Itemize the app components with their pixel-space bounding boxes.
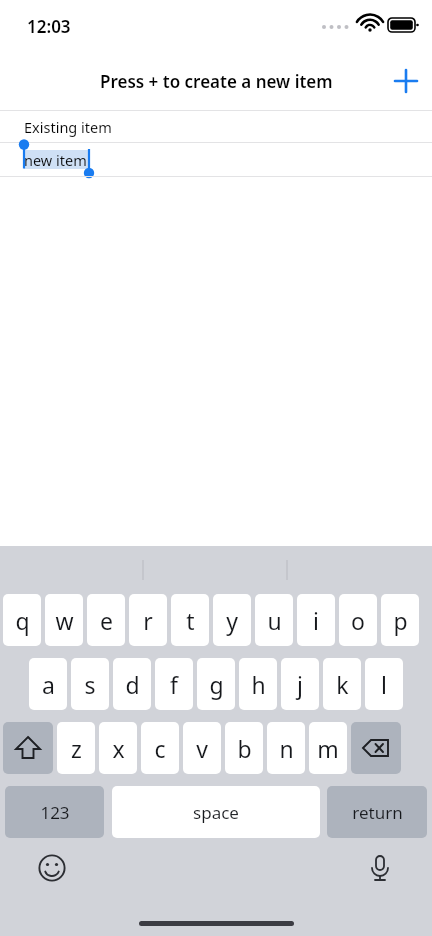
staticText: t: [186, 605, 195, 636]
button[interactable]: z: [57, 722, 95, 774]
button[interactable]: r: [129, 594, 167, 646]
button[interactable]: Shift: [3, 722, 53, 774]
staticText: n: [279, 733, 294, 764]
staticText: x: [112, 733, 125, 764]
staticText: return: [352, 801, 403, 824]
staticText: new item: [24, 150, 87, 170]
button[interactable]: o: [339, 594, 377, 646]
button[interactable]: m: [309, 722, 347, 774]
button[interactable]: k: [323, 658, 361, 710]
button[interactable]: t: [171, 594, 209, 646]
staticText: y: [226, 605, 238, 636]
button[interactable]: u: [255, 594, 293, 646]
staticText: g: [209, 669, 224, 700]
button[interactable]: x: [99, 722, 137, 774]
staticText: e: [100, 605, 113, 636]
button[interactable]: w: [45, 594, 83, 646]
button[interactable]: v: [183, 722, 221, 774]
staticText: m: [317, 733, 339, 764]
button[interactable]: l: [365, 658, 403, 710]
button[interactable]: 123: [5, 786, 104, 838]
staticText: Press + to create a new item: [100, 70, 333, 93]
staticText: q: [15, 605, 30, 636]
button[interactable]: Existing item: [0, 111, 432, 142]
button[interactable]: Backspace: [351, 722, 401, 774]
button[interactable]: n: [267, 722, 305, 774]
button[interactable]: h: [239, 658, 277, 710]
staticText: z: [71, 733, 82, 764]
button[interactable]: f: [155, 658, 193, 710]
staticText: c: [154, 733, 166, 764]
staticText: p: [393, 605, 408, 636]
staticText: j: [297, 669, 303, 700]
button[interactable]: d: [113, 658, 151, 710]
staticText: space: [193, 801, 239, 824]
button[interactable]: a: [29, 658, 67, 710]
staticText: v: [196, 733, 208, 764]
staticText: f: [170, 669, 178, 700]
button[interactable]: return: [327, 786, 427, 838]
button[interactable]: g: [197, 658, 235, 710]
button[interactable]: q: [3, 594, 41, 646]
staticText: h: [251, 669, 266, 700]
staticText: o: [351, 605, 365, 636]
button[interactable]: j: [281, 658, 319, 710]
button[interactable]: space: [112, 786, 320, 838]
staticText: d: [125, 669, 140, 700]
staticText: w: [55, 605, 74, 636]
button[interactable]: s: [71, 658, 109, 710]
staticText: l: [381, 669, 387, 700]
staticText: 123: [40, 801, 70, 824]
button[interactable]: b: [225, 722, 263, 774]
staticText: i: [313, 605, 319, 636]
button[interactable]: Emoji keyboard: [32, 848, 72, 888]
button[interactable]: p: [381, 594, 419, 646]
staticText: a: [42, 669, 55, 700]
staticText: b: [237, 733, 252, 764]
button[interactable]: new item: [0, 143, 432, 176]
staticText: 12:03: [27, 15, 71, 38]
staticText: k: [336, 669, 349, 700]
staticText: r: [143, 605, 153, 636]
button[interactable]: Dictation: [360, 848, 400, 888]
staticText: s: [84, 669, 96, 700]
button[interactable]: e: [87, 594, 125, 646]
staticText: Existing item: [24, 117, 112, 137]
button[interactable]: Add new item: [380, 52, 432, 110]
staticText: u: [267, 605, 282, 636]
button[interactable]: y: [213, 594, 251, 646]
button[interactable]: i: [297, 594, 335, 646]
button[interactable]: c: [141, 722, 179, 774]
